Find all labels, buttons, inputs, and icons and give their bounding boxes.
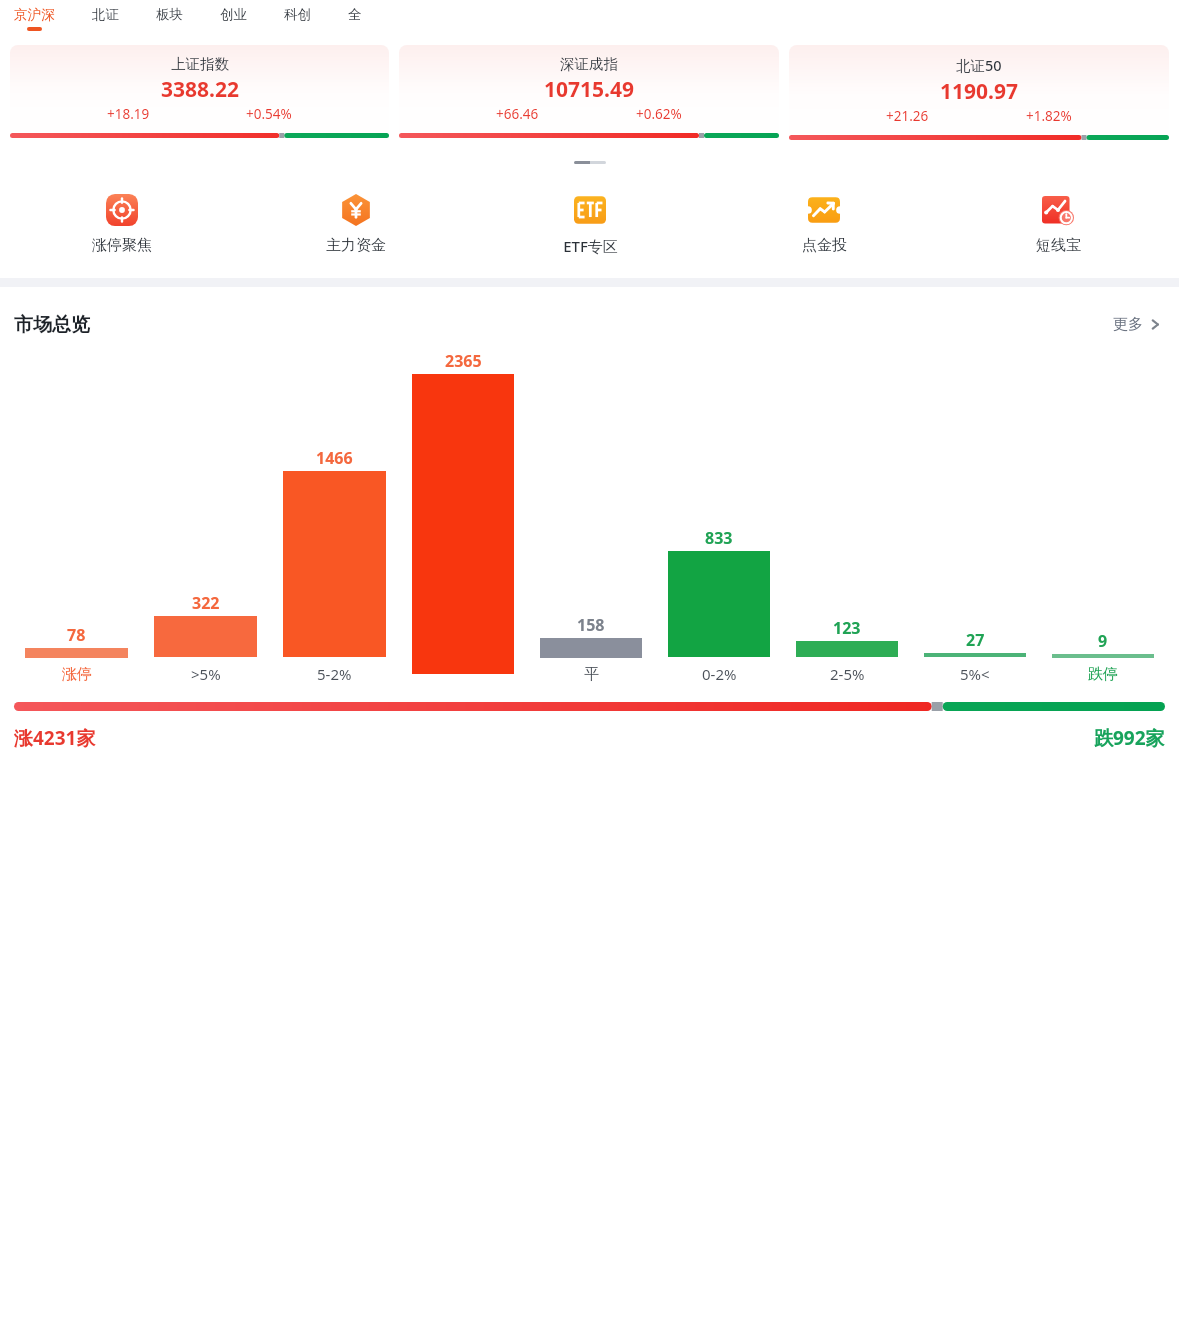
staticText: 0-2%	[702, 664, 737, 684]
button[interactable]: 科创	[282, 6, 313, 27]
staticText: 市场总览	[14, 313, 90, 337]
button[interactable]: 创业	[218, 6, 249, 27]
button[interactable]: 北证	[90, 6, 121, 27]
staticText: 主力资金	[326, 236, 386, 255]
staticText: 2-5%	[830, 664, 865, 684]
staticText: 5%<	[960, 664, 990, 684]
staticText: +66.46	[496, 105, 539, 123]
button[interactable]: 更多	[1109, 311, 1165, 338]
button[interactable]: 9	[1041, 350, 1165, 684]
staticText: 京沪深	[14, 6, 55, 23]
button[interactable]: 北证50	[789, 45, 1169, 147]
staticText: 深证成指	[560, 55, 618, 73]
button[interactable]: ETF专区	[473, 192, 707, 258]
button[interactable]: 点金投	[707, 192, 941, 257]
staticText: 更多	[1113, 315, 1143, 334]
button[interactable]: 板块	[154, 6, 185, 27]
staticText: >5%	[191, 664, 221, 684]
staticText: 全	[348, 6, 362, 23]
other: 更多	[1150, 319, 1161, 330]
staticText: +0.62%	[636, 105, 682, 123]
staticText: 短线宝	[1036, 236, 1081, 255]
staticText: 跌停	[1088, 665, 1118, 684]
staticText: 10715.49	[544, 75, 634, 104]
button[interactable]: 322	[143, 350, 268, 684]
staticText: 9	[1098, 630, 1108, 652]
staticText: 板块	[156, 6, 183, 23]
button[interactable]: 上证指数	[10, 45, 389, 145]
button[interactable]: 涨停聚焦	[4, 192, 239, 257]
button[interactable]: 2365	[401, 350, 525, 684]
staticText: 1466	[316, 447, 353, 469]
staticText: +0.54%	[246, 105, 292, 123]
staticText: 3388.22	[161, 75, 239, 104]
button[interactable]: 短线宝	[941, 192, 1175, 257]
staticText: 涨停	[62, 665, 92, 684]
button[interactable]: 深证成指	[399, 45, 779, 145]
staticText: +21.26	[886, 107, 929, 125]
staticText: +18.19	[107, 105, 150, 123]
staticText: 27	[966, 629, 985, 651]
button[interactable]: 27	[913, 350, 1037, 684]
button[interactable]: 833	[657, 350, 781, 684]
button[interactable]: 1466	[272, 350, 397, 684]
staticText: 5-2%	[317, 664, 352, 684]
staticText: 点金投	[802, 236, 847, 255]
button[interactable]: 158	[529, 350, 653, 684]
staticText: 上证指数	[171, 55, 229, 73]
staticText: 78	[67, 624, 86, 646]
button[interactable]: 123	[785, 350, 909, 684]
staticText: ETF专区	[563, 236, 618, 256]
staticText: 北证	[92, 6, 119, 23]
staticText: 158	[577, 614, 605, 636]
staticText: 跌992家	[1094, 725, 1165, 751]
staticText: 北证50	[956, 55, 1002, 75]
button[interactable]: 全	[346, 6, 364, 27]
staticText: 1190.97	[940, 77, 1018, 106]
staticText: 2365	[445, 350, 482, 372]
staticText: +1.82%	[1026, 107, 1072, 125]
staticText: 涨停聚焦	[92, 236, 152, 255]
button[interactable]: 主力资金	[239, 192, 473, 257]
staticText: 创业	[220, 6, 247, 23]
staticText: 322	[192, 592, 220, 614]
staticText: 833	[705, 527, 733, 549]
staticText: 123	[833, 617, 861, 639]
button[interactable]: 78	[14, 350, 139, 684]
staticText: 科创	[284, 6, 311, 23]
button[interactable]: 京沪深	[12, 6, 57, 31]
staticText: 涨4231家	[14, 725, 96, 751]
staticText: 平	[584, 665, 599, 684]
